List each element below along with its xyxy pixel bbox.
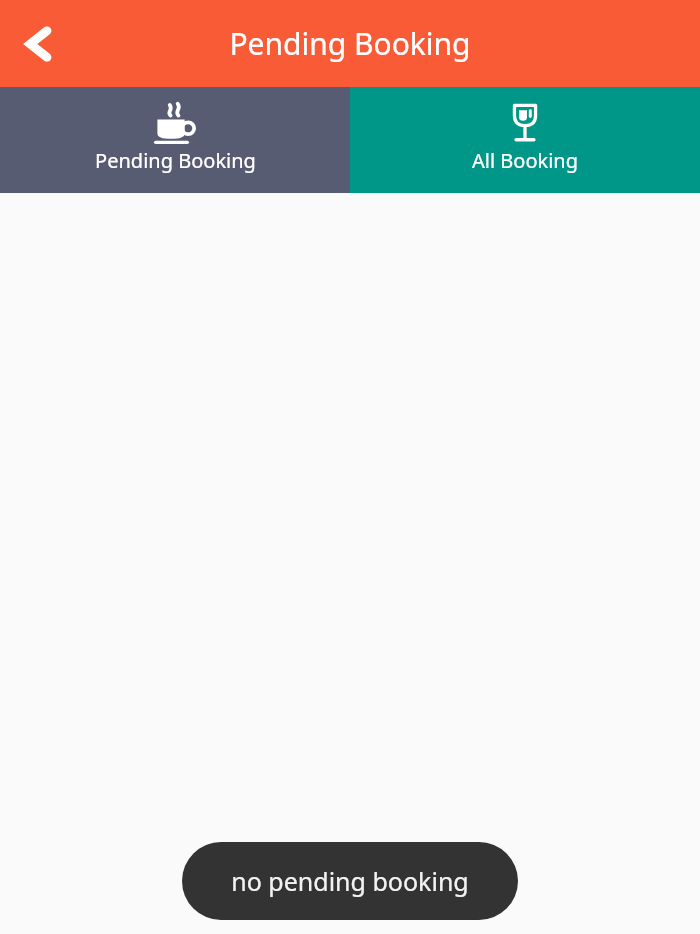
staticText: Pending Booking <box>229 23 471 64</box>
button[interactable]: Back <box>0 1 86 87</box>
button[interactable]: All Booking <box>350 87 700 193</box>
staticText: no pending booking <box>231 864 469 898</box>
staticText: Pending Booking <box>95 147 256 174</box>
button[interactable]: Pending Booking <box>0 87 350 193</box>
button[interactable]: no pending booking <box>182 842 518 920</box>
staticText: All Booking <box>472 147 578 174</box>
